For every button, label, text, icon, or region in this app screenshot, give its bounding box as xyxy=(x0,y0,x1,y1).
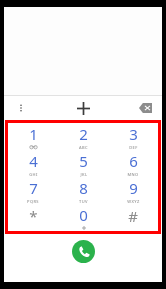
staticText: WXYZ xyxy=(127,199,140,204)
staticText: ABC xyxy=(79,145,88,150)
button[interactable]: 3 xyxy=(108,123,158,150)
staticText: # xyxy=(128,206,138,226)
button[interactable]: Call xyxy=(72,240,95,263)
staticText: 6 xyxy=(129,151,138,171)
staticText: 2 xyxy=(79,124,88,144)
staticText: MNO xyxy=(127,172,139,177)
staticText: TUV xyxy=(79,199,88,204)
staticText: 8 xyxy=(79,178,88,198)
button[interactable]: 5 xyxy=(58,150,108,177)
staticText: JKL xyxy=(80,172,88,177)
button[interactable]: 6 xyxy=(108,150,158,177)
button[interactable]: 7 xyxy=(8,177,58,204)
button[interactable]: More options xyxy=(4,96,38,120)
staticText: * xyxy=(29,206,38,226)
button[interactable]: 9 xyxy=(108,177,158,204)
staticText: 9 xyxy=(129,178,138,198)
button[interactable]: # xyxy=(108,204,158,231)
staticText: GHI xyxy=(29,172,38,177)
button[interactable]: 2 xyxy=(58,123,108,150)
staticText: 5 xyxy=(79,151,88,171)
staticText: 4 xyxy=(29,151,38,171)
button[interactable]: Add xyxy=(38,96,128,120)
button[interactable]: * xyxy=(8,204,58,231)
button[interactable]: 1 xyxy=(8,123,58,150)
button[interactable]: Backspace xyxy=(128,96,162,120)
staticText: PQRS xyxy=(27,199,39,204)
button[interactable]: 4 xyxy=(8,150,58,177)
staticText: DEF xyxy=(129,145,138,150)
staticText: 3 xyxy=(129,124,138,144)
staticText: 1 xyxy=(29,124,38,144)
button[interactable]: 0 xyxy=(58,204,108,231)
staticText: 7 xyxy=(29,178,38,198)
staticText: 0 xyxy=(79,205,88,225)
button[interactable]: 8 xyxy=(58,177,108,204)
